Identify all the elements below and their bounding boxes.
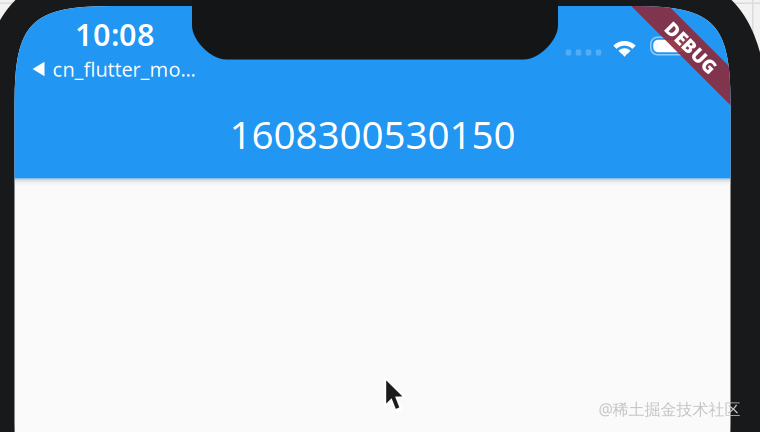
staticText: 10:08 [75,14,155,54]
staticText: cn_flutter_mo... [52,56,195,82]
staticText: DEBUG [659,35,724,60]
staticText: 1608300530150 [229,108,515,160]
button[interactable]: cn_flutter_mo... [33,57,203,81]
staticText: @稀土掘金技术社区 [598,398,740,420]
